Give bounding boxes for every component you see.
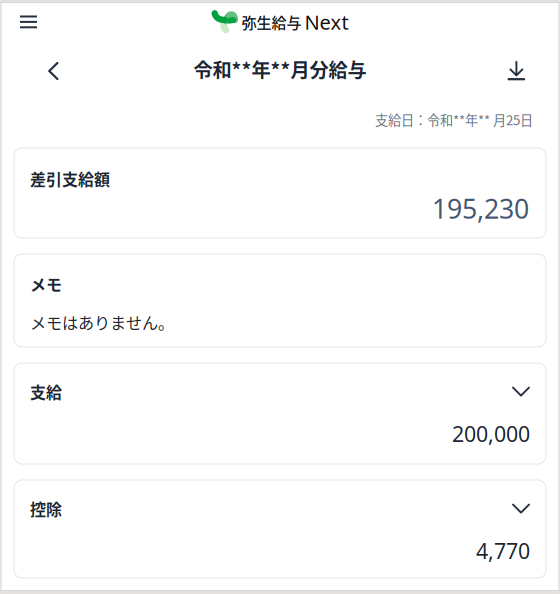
button[interactable]: Menu [0, 0, 53, 43]
staticText: 差引支給額 [30, 167, 110, 190]
staticText: 4,770 [476, 537, 530, 565]
staticText: 200,000 [452, 420, 530, 448]
staticText: 弥生給与 [241, 11, 301, 33]
staticText: 支給 [30, 380, 62, 403]
button[interactable]: Back [0, 44, 75, 94]
staticText: メモ [30, 272, 62, 295]
button[interactable]: 控除 [14, 480, 546, 578]
button[interactable]: 支給 [14, 363, 546, 464]
staticText: 195,230 [432, 191, 529, 226]
staticText: Next [304, 9, 348, 35]
staticText: 令和**年**月分給与 [193, 55, 366, 83]
staticText: メモはありません。 [30, 310, 174, 334]
staticText: 支給日：令和**年** 月25日 [375, 110, 533, 129]
button[interactable]: Download [492, 44, 560, 94]
staticText: 控除 [30, 497, 62, 520]
